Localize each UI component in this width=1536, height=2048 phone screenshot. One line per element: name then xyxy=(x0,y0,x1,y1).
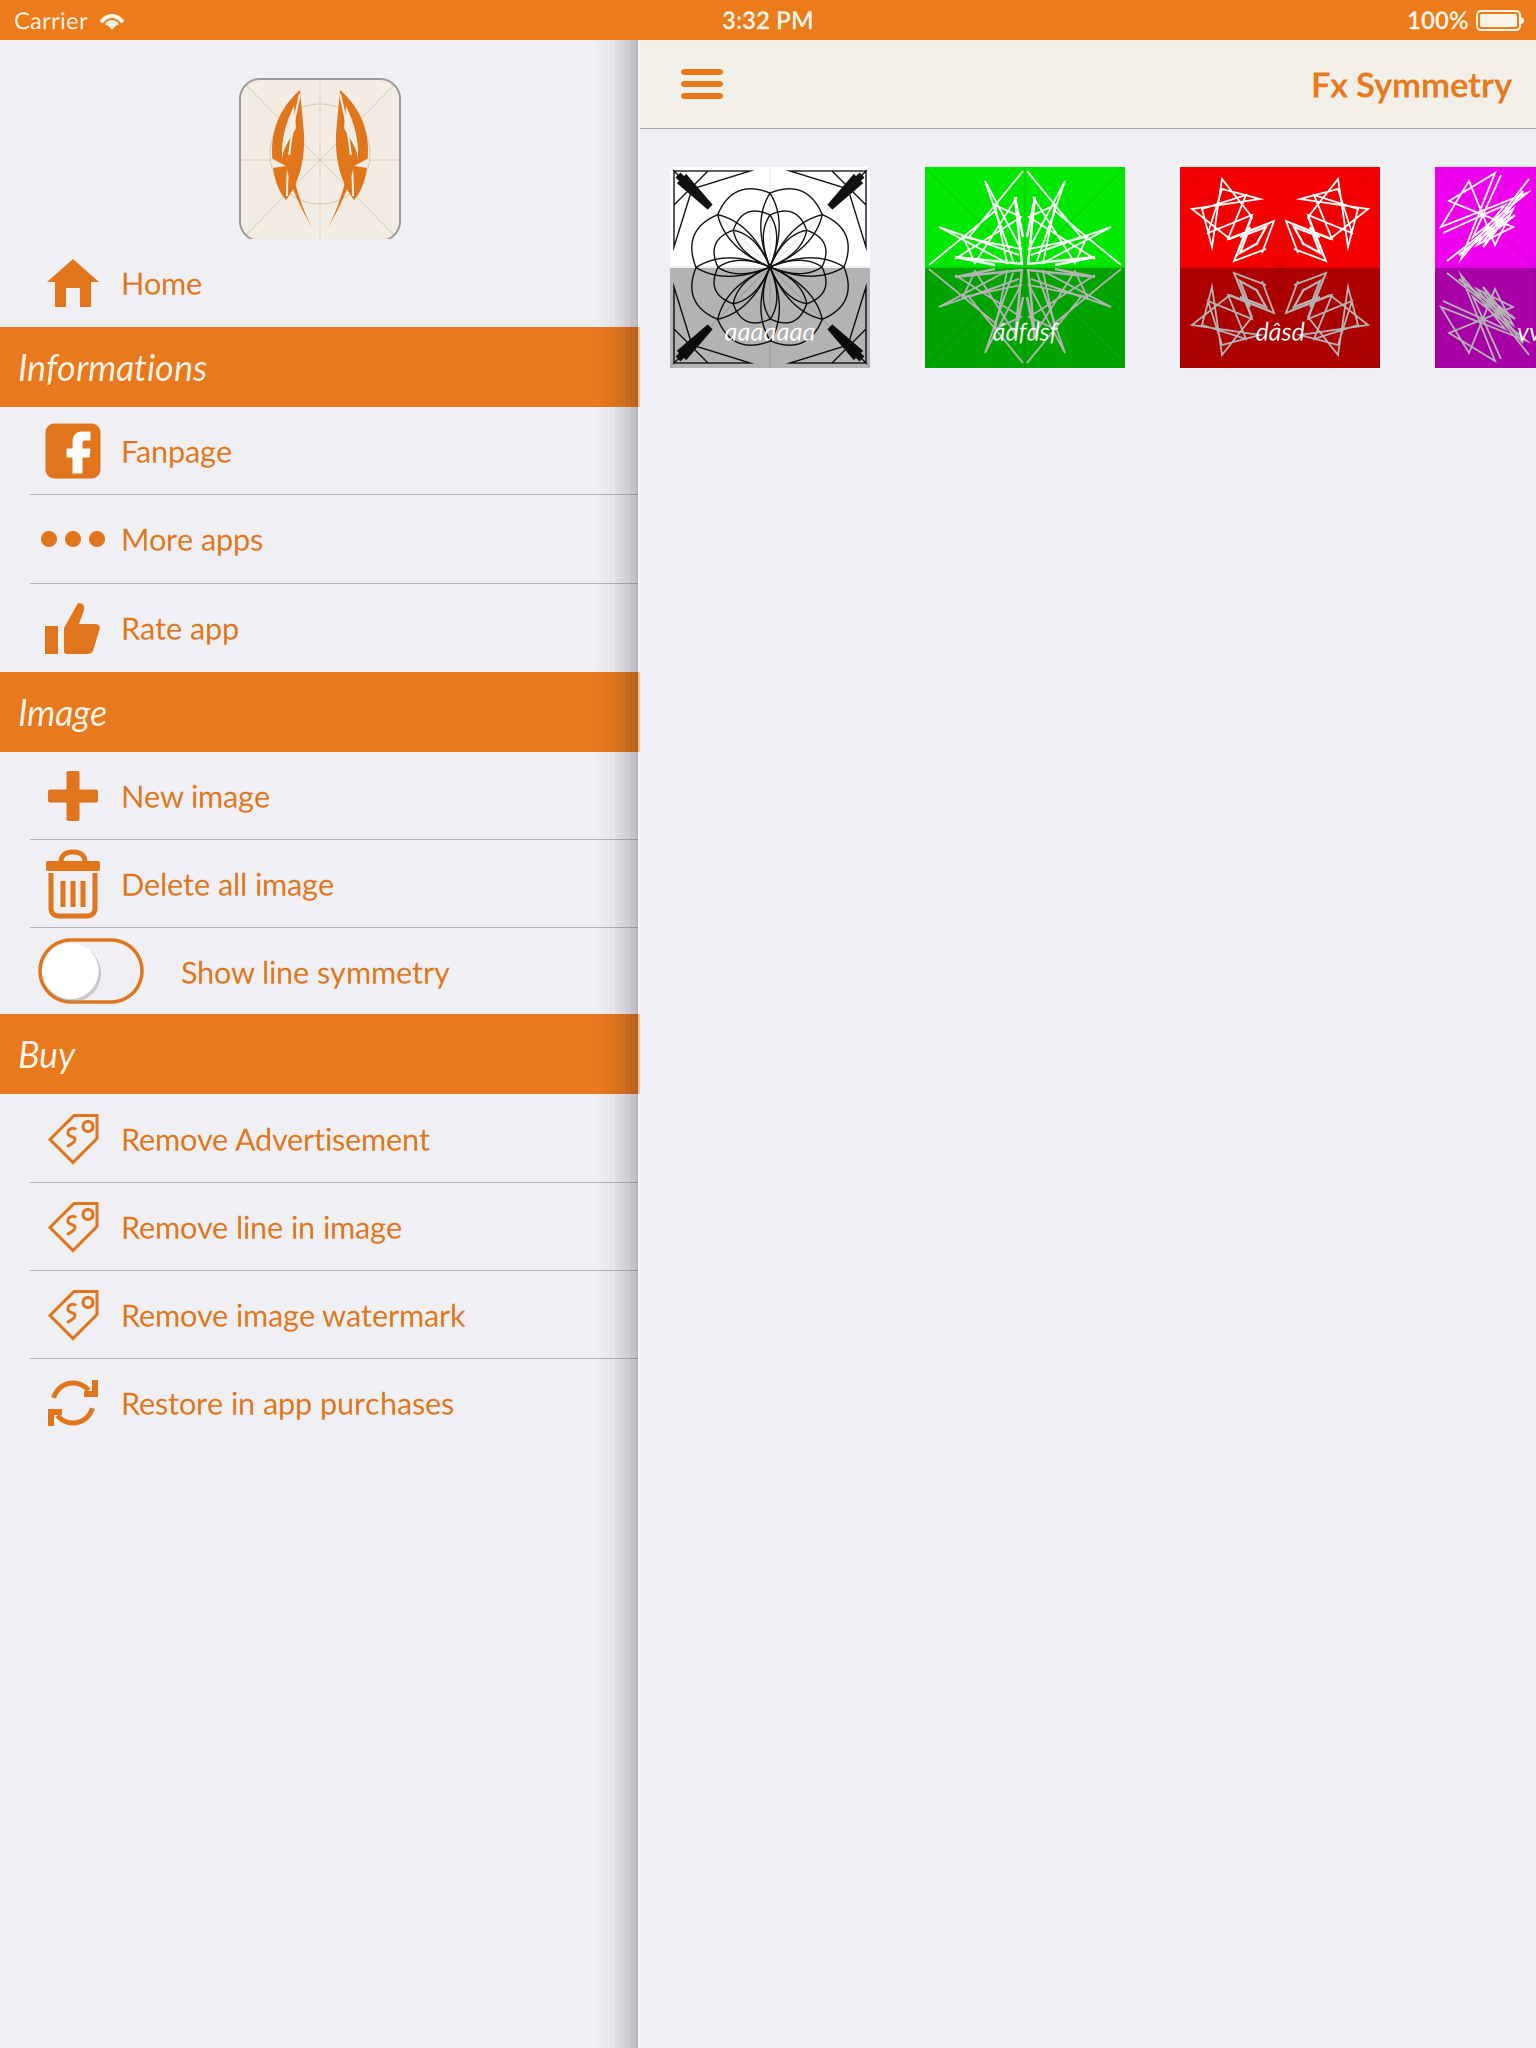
staticText: More apps xyxy=(121,521,263,557)
button[interactable]: Rate app xyxy=(0,584,640,672)
staticText: Rate app xyxy=(121,610,239,646)
button[interactable]: More apps xyxy=(0,495,640,583)
button[interactable]: Fanpage xyxy=(0,407,640,495)
staticText: Fx Symmetry xyxy=(1311,63,1512,105)
staticText: 3:32 PM xyxy=(722,6,814,34)
staticText: Carrier xyxy=(14,6,88,34)
staticText: Home xyxy=(121,265,202,301)
staticText: Remove line in image xyxy=(121,1209,402,1245)
staticText: Show line symmetry xyxy=(181,954,450,990)
staticText: dâsd xyxy=(1255,316,1304,346)
staticText: Delete all image xyxy=(121,866,334,902)
button[interactable]: Remove Advertisement xyxy=(0,1095,640,1183)
button[interactable]: New image xyxy=(0,752,640,840)
staticText: Remove image watermark xyxy=(121,1297,466,1333)
staticText: Buy xyxy=(18,1032,75,1076)
button[interactable]: ádfdsf xyxy=(925,167,1125,368)
staticText: 100% xyxy=(1407,6,1469,34)
button[interactable]: Restore in app purchases xyxy=(0,1359,640,1447)
button[interactable]: Remove line in image xyxy=(0,1183,640,1271)
staticText: Restore in app purchases xyxy=(121,1385,454,1421)
staticText: aaaaaaa xyxy=(724,316,815,346)
button[interactable]: Show line symmetry xyxy=(0,928,640,1016)
button[interactable]: Delete all image xyxy=(0,840,640,928)
button[interactable]: Remove image watermark xyxy=(0,1271,640,1359)
staticText: Image xyxy=(18,690,107,734)
staticText: Informations xyxy=(18,345,207,389)
button[interactable]: vvv xyxy=(1435,167,1536,368)
staticText: ádfdsf xyxy=(992,316,1057,346)
staticText: Fanpage xyxy=(121,433,232,469)
staticText: Remove Advertisement xyxy=(121,1121,430,1157)
staticText: vvv xyxy=(1517,316,1536,346)
staticText: New image xyxy=(121,778,270,814)
button[interactable]: dâsd xyxy=(1180,167,1380,368)
button[interactable]: aaaaaaa xyxy=(670,167,870,368)
button[interactable]: Menu xyxy=(660,40,744,128)
button[interactable]: Home xyxy=(0,239,640,327)
